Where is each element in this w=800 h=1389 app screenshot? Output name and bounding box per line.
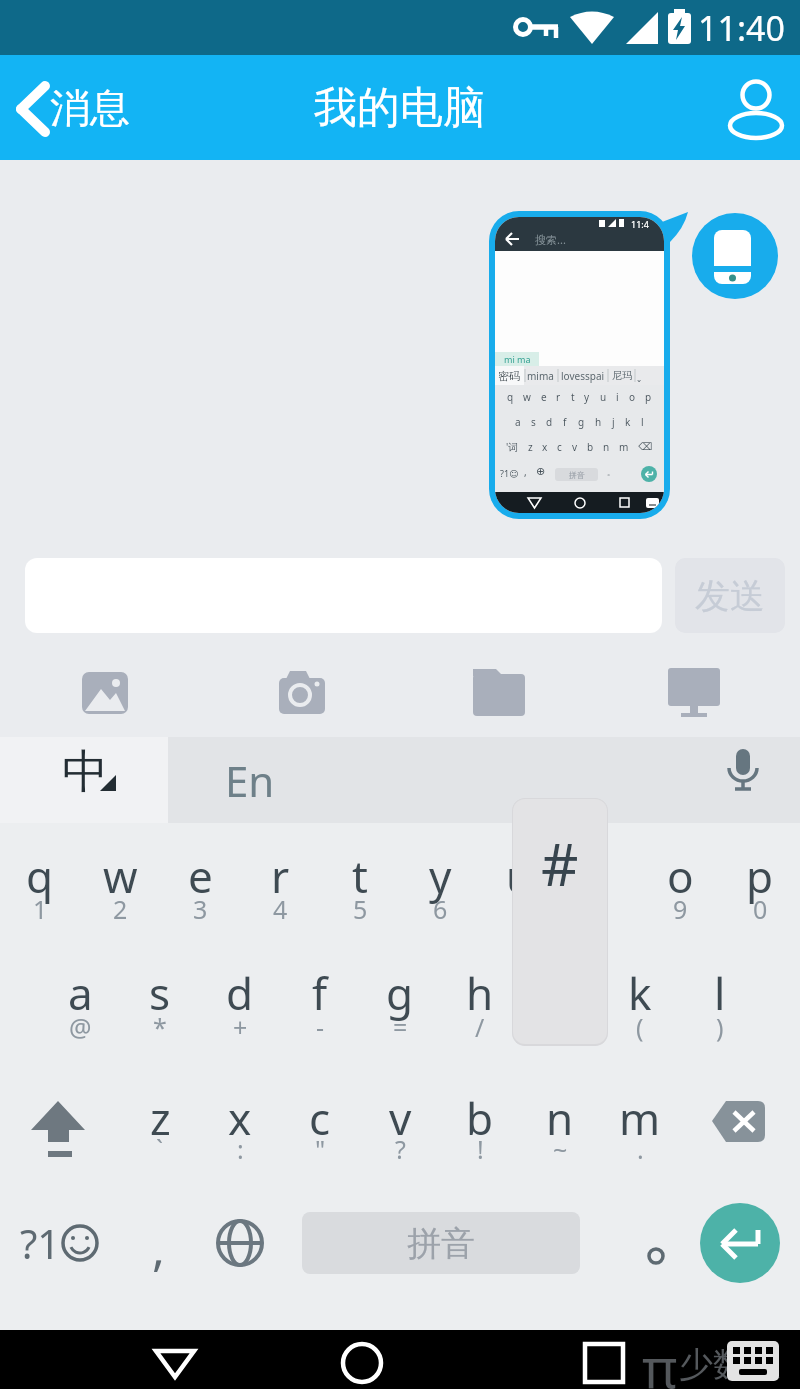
staticText: o bbox=[629, 390, 636, 404]
staticText: 消息 bbox=[50, 83, 130, 133]
staticText: 。 bbox=[607, 467, 615, 477]
button[interactable]: x bbox=[200, 1083, 280, 1153]
button[interactable] bbox=[720, 1330, 786, 1389]
staticText: . bbox=[637, 1132, 644, 1164]
button[interactable]: c bbox=[280, 1083, 360, 1153]
button[interactable]: w bbox=[80, 841, 160, 911]
staticText: '词 bbox=[506, 440, 519, 454]
button[interactable]: r bbox=[240, 841, 320, 911]
button[interactable]: i bbox=[560, 841, 640, 911]
button[interactable]: z bbox=[120, 1083, 200, 1153]
button[interactable]: f bbox=[280, 958, 360, 1028]
button[interactable] bbox=[700, 1203, 780, 1283]
button[interactable]: m bbox=[600, 1083, 680, 1153]
button[interactable] bbox=[20, 1087, 96, 1173]
button[interactable] bbox=[70, 660, 140, 720]
staticText: m bbox=[619, 1088, 661, 1148]
staticText: y bbox=[429, 846, 452, 906]
button[interactable] bbox=[0, 737, 168, 823]
staticText: 发送 bbox=[695, 574, 765, 618]
button[interactable]: a bbox=[40, 958, 120, 1028]
staticText: y bbox=[584, 390, 590, 404]
staticText: j bbox=[612, 415, 615, 429]
button[interactable] bbox=[210, 1207, 270, 1277]
button[interactable] bbox=[327, 1330, 397, 1389]
staticText: ?1☺ bbox=[500, 467, 519, 479]
button[interactable] bbox=[0, 55, 150, 160]
staticText: r bbox=[556, 390, 561, 404]
staticText: g bbox=[386, 963, 414, 1023]
button[interactable]: k bbox=[600, 958, 680, 1028]
staticText: , bbox=[152, 1215, 165, 1280]
button[interactable] bbox=[660, 660, 730, 720]
button[interactable]: e bbox=[160, 841, 240, 911]
staticText: 2 bbox=[113, 892, 128, 924]
button[interactable]: p bbox=[720, 841, 800, 911]
staticText: h bbox=[466, 963, 494, 1023]
staticText: 9 bbox=[673, 892, 688, 924]
button[interactable] bbox=[569, 1330, 639, 1389]
staticText: b bbox=[466, 1088, 494, 1148]
staticText: + bbox=[233, 1010, 248, 1042]
staticText: 搜索... bbox=[535, 232, 566, 247]
staticText: h bbox=[595, 415, 602, 429]
button[interactable] bbox=[140, 1330, 210, 1389]
staticText: 6 bbox=[433, 892, 448, 924]
button[interactable]: En bbox=[180, 737, 320, 823]
staticText: q bbox=[26, 846, 54, 906]
button[interactable]: u bbox=[480, 841, 560, 911]
button[interactable]: d bbox=[200, 958, 280, 1028]
staticText: m bbox=[619, 440, 629, 454]
button[interactable] bbox=[692, 213, 778, 299]
button[interactable]: n bbox=[520, 1083, 600, 1153]
button[interactable]: t bbox=[320, 841, 400, 911]
button[interactable]: q bbox=[0, 841, 80, 911]
button[interactable]: b bbox=[440, 1083, 520, 1153]
button[interactable] bbox=[700, 1087, 780, 1167]
staticText: u bbox=[600, 390, 607, 404]
button[interactable]: , bbox=[128, 1212, 188, 1282]
button[interactable]: s bbox=[120, 958, 200, 1028]
button[interactable] bbox=[720, 55, 800, 160]
staticText: a bbox=[515, 415, 521, 429]
button[interactable] bbox=[464, 660, 534, 720]
staticText: mima bbox=[527, 369, 554, 383]
staticText: 少数派 bbox=[679, 1343, 781, 1386]
button[interactable]: 拼音 bbox=[302, 1212, 580, 1274]
staticText: n bbox=[603, 440, 610, 454]
staticText: - bbox=[316, 1010, 325, 1042]
button[interactable]: 11:4 bbox=[489, 211, 670, 519]
button[interactable]: v bbox=[360, 1083, 440, 1153]
staticText: w bbox=[103, 846, 138, 906]
staticText: : bbox=[237, 1132, 244, 1164]
button[interactable]: y bbox=[400, 841, 480, 911]
staticText: 拼音 bbox=[407, 1222, 475, 1265]
staticText: c bbox=[557, 440, 562, 454]
button[interactable]: h bbox=[440, 958, 520, 1028]
staticText: 拼音 bbox=[569, 470, 585, 480]
staticText: i bbox=[616, 390, 619, 404]
staticText: 密码 bbox=[498, 369, 520, 383]
staticText: " bbox=[315, 1132, 326, 1164]
button[interactable]: o bbox=[640, 841, 720, 911]
staticText: ( bbox=[636, 1010, 644, 1042]
button[interactable]: l bbox=[680, 958, 760, 1028]
button[interactable]: ?1 bbox=[0, 1213, 80, 1273]
staticText: 11:40 bbox=[698, 5, 785, 49]
staticText: , bbox=[524, 465, 527, 479]
button[interactable] bbox=[630, 1217, 682, 1277]
button[interactable] bbox=[710, 737, 780, 823]
button[interactable] bbox=[267, 660, 337, 720]
button[interactable]: g bbox=[360, 958, 440, 1028]
staticText: l bbox=[714, 963, 726, 1023]
staticText: s bbox=[149, 963, 171, 1023]
staticText: z bbox=[528, 440, 533, 454]
staticText: ` bbox=[156, 1132, 164, 1164]
button[interactable]: 发送 bbox=[675, 558, 785, 633]
staticText: g bbox=[578, 415, 585, 429]
